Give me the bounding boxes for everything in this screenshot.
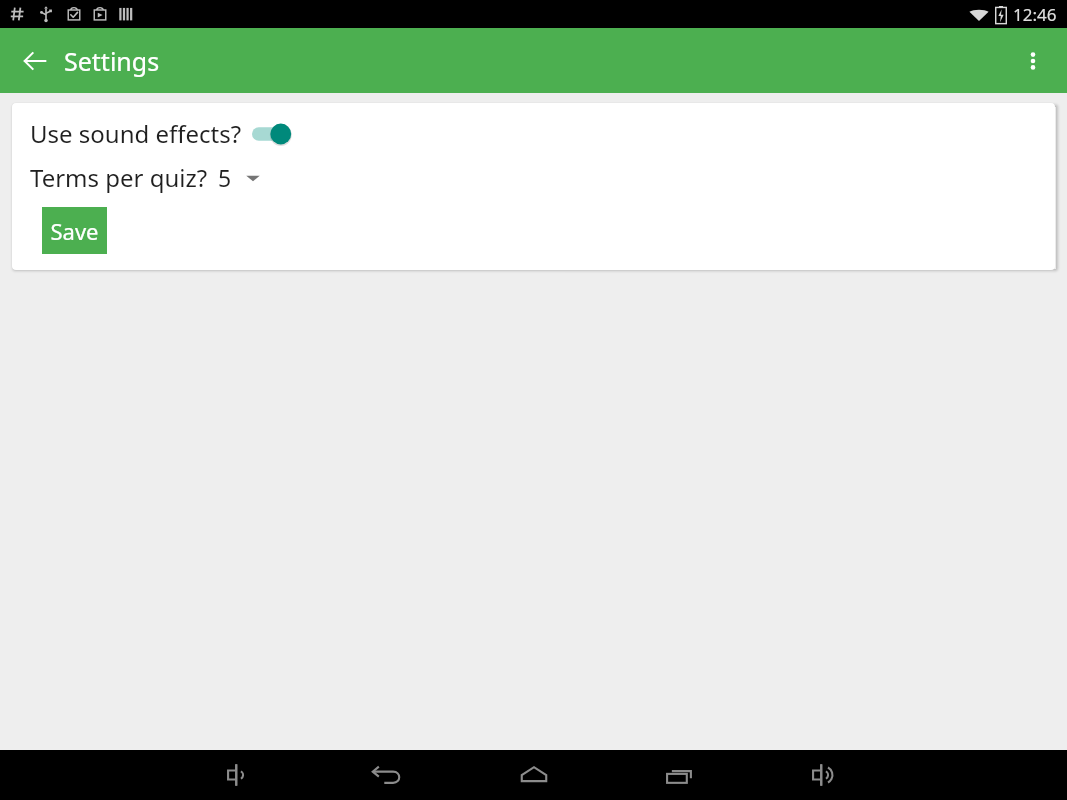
button[interactable]: Back xyxy=(356,750,418,800)
staticText: 12:46 xyxy=(1013,3,1057,26)
button[interactable]: Back xyxy=(14,40,56,82)
staticText: 5 xyxy=(218,162,232,193)
button[interactable]: Volume up xyxy=(795,750,857,800)
staticText: Terms per quiz? xyxy=(30,161,208,194)
button[interactable]: Save xyxy=(42,207,107,254)
staticText: Use sound effects? xyxy=(30,117,242,150)
button[interactable]: Use sound effects? xyxy=(30,117,292,150)
button[interactable]: More options xyxy=(1009,37,1057,85)
button[interactable]: Use sound effects toggle xyxy=(252,121,292,147)
staticText: Save xyxy=(50,216,99,246)
button[interactable]: Home xyxy=(503,750,565,800)
button[interactable]: 5 xyxy=(218,160,264,195)
staticText: Settings xyxy=(64,44,160,78)
button[interactable]: Volume down xyxy=(210,750,272,800)
button[interactable]: Recent apps xyxy=(649,750,711,800)
